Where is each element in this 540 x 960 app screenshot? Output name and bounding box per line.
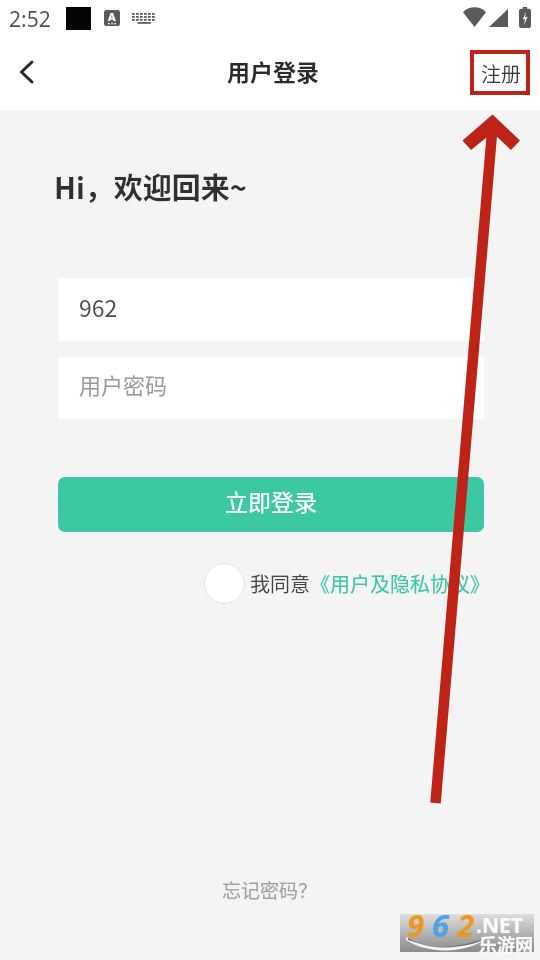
staticText: 962	[79, 290, 118, 323]
staticText: 用户密码	[79, 368, 168, 400]
button[interactable]: 忘记密码？	[222, 876, 318, 904]
staticText: 我同意	[250, 569, 310, 598]
button[interactable]: 用户密码	[58, 357, 484, 419]
staticText: 用户登录	[227, 54, 319, 87]
button[interactable]: 同意用户及隐私协议	[204, 563, 245, 604]
staticText: A	[108, 9, 116, 24]
staticText: 乐游网	[479, 931, 533, 957]
staticText: 2:52	[9, 5, 51, 34]
staticText: 962	[407, 904, 483, 942]
button[interactable]: 立即登录	[58, 477, 484, 532]
button[interactable]: 962	[58, 278, 484, 341]
button[interactable]: 注册	[473, 53, 529, 94]
staticText: .NET	[476, 911, 523, 940]
staticText: 注册	[481, 59, 521, 88]
staticText: 立即登录	[225, 484, 317, 517]
button[interactable]: 《用户及隐私协议》	[310, 569, 490, 598]
staticText: Hi，欢迎回来~	[54, 165, 247, 207]
button[interactable]: 返回	[4, 48, 48, 92]
